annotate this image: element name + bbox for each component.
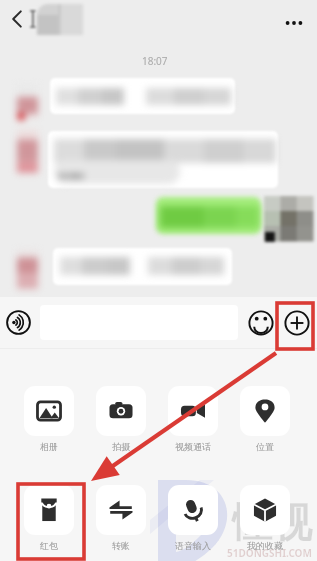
button[interactable]: More functions xyxy=(284,310,310,336)
staticText: 视频通话 xyxy=(175,441,211,452)
button[interactable]: 转账 xyxy=(88,485,154,551)
button[interactable]: 拍摄 xyxy=(88,386,154,452)
button[interactable]: 我的收藏 xyxy=(232,485,298,551)
staticText: 18:07 xyxy=(142,54,168,68)
button[interactable]: 红包 xyxy=(16,485,82,551)
button[interactable]: More options xyxy=(277,4,309,36)
staticText: 拍摄 xyxy=(112,441,130,452)
button[interactable]: 位置 xyxy=(232,386,298,452)
staticText: 相册 xyxy=(40,441,58,452)
staticText: 懂视 xyxy=(232,497,312,547)
staticText: 红包 xyxy=(40,540,58,551)
staticText: 语音输入 xyxy=(175,540,211,551)
staticText: 转账 xyxy=(112,540,130,551)
button[interactable]: 相册 xyxy=(16,386,82,452)
staticText: 我的收藏 xyxy=(247,540,283,551)
button[interactable]: 语音输入 xyxy=(160,485,226,551)
button[interactable]: Voice message xyxy=(5,309,32,336)
staticText: 位置 xyxy=(256,441,274,452)
staticText: 51DONGSHI.COM xyxy=(227,546,312,560)
button[interactable]: Emoji xyxy=(248,310,274,336)
button[interactable]: Back xyxy=(3,6,29,32)
button[interactable]: 视频通话 xyxy=(160,386,226,452)
